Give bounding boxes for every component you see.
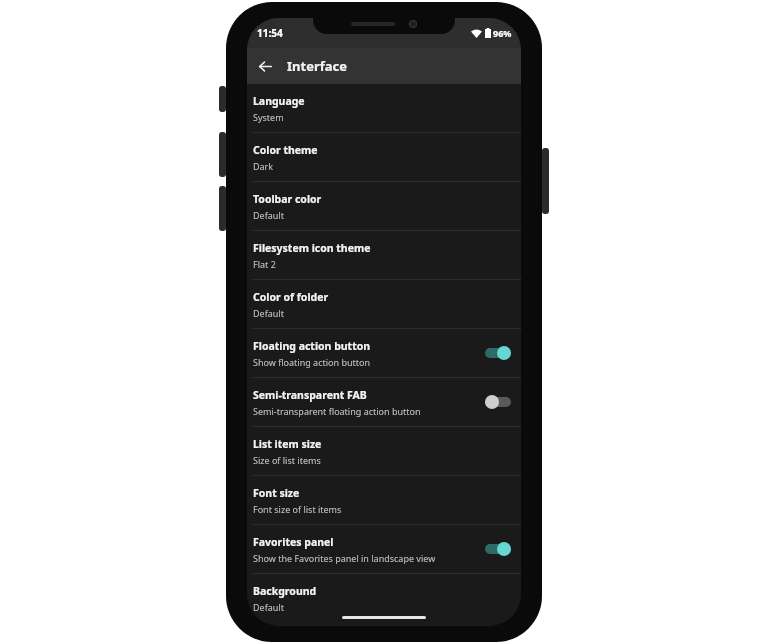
staticText: Language (253, 94, 305, 108)
staticText: Color theme (253, 143, 318, 157)
staticText: Default (253, 601, 284, 613)
staticText: Default (253, 307, 284, 319)
button[interactable]: Toolbar color (247, 182, 521, 230)
staticText: Font size of list items (253, 503, 342, 515)
button[interactable]: Background (247, 574, 521, 622)
button[interactable]: Font size (247, 476, 521, 524)
staticText: Font size (253, 486, 300, 500)
staticText: Semi-transparent FAB (253, 388, 367, 402)
button[interactable]: List item size (247, 427, 521, 475)
button[interactable]: Favorites panel (247, 525, 521, 573)
staticText: System (253, 111, 284, 123)
staticText: Show the Favorites panel in landscape vi… (253, 552, 436, 564)
button[interactable]: Back (251, 52, 279, 80)
staticText: Color of folder (253, 290, 329, 304)
staticText: Toolbar color (253, 192, 322, 206)
staticText: 11:54 (257, 26, 283, 40)
staticText: Default (253, 209, 284, 221)
staticText: Flat 2 (253, 258, 276, 270)
staticText: Semi-transparent floating action button (253, 405, 421, 417)
staticText: Favorites panel (253, 535, 334, 549)
staticText: Interface (287, 57, 348, 75)
button[interactable]: Floating action button (247, 329, 521, 377)
staticText: 96% (493, 27, 512, 39)
button[interactable]: Color theme (247, 133, 521, 181)
button[interactable]: Language (247, 84, 521, 132)
staticText: Show floating action button (253, 356, 370, 368)
staticText: Dark (253, 160, 274, 172)
staticText: Floating action button (253, 339, 371, 353)
button[interactable]: Semi-transparent FAB (247, 378, 521, 426)
staticText: Background (253, 584, 317, 598)
button[interactable]: Color of folder (247, 280, 521, 328)
button[interactable]: Filesystem icon theme (247, 231, 521, 279)
button[interactable]: Floating action button toggle (483, 343, 513, 363)
button[interactable]: Favorites panel toggle (483, 539, 513, 559)
staticText: List item size (253, 437, 322, 451)
staticText: Filesystem icon theme (253, 241, 371, 255)
button[interactable]: Semi-transparent FAB toggle (483, 392, 513, 412)
staticText: Size of list items (253, 454, 321, 466)
